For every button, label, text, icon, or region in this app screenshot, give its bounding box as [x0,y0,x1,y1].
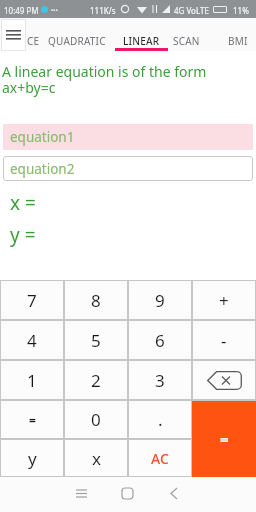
staticText: . [158,408,163,431]
staticText: 2 [91,369,101,392]
button[interactable] [86,477,171,512]
staticText: = [220,429,229,449]
button[interactable]: 7 [1,281,63,319]
staticText: 4G VoLTE [174,5,209,16]
staticText: 3 [155,369,165,392]
staticText: equation2 [10,160,75,178]
button[interactable]: 8 [65,281,127,319]
button[interactable]: SCAN [173,34,200,48]
staticText: y = [10,222,36,248]
button[interactable]: QUADRATIC [48,34,106,48]
staticText: 111K/s [90,5,116,16]
button[interactable]: 3 [129,361,191,399]
staticText: 8 [91,289,101,312]
button[interactable]: 9 [129,281,191,319]
staticText: y [28,447,37,470]
staticText: 4 [27,329,37,352]
staticText: 5 [91,329,101,352]
button[interactable]: CE [27,34,40,48]
staticText: 6 [155,329,165,352]
staticText: ... [51,2,58,13]
staticText: CE [27,34,40,48]
button[interactable]: equation1 [3,124,253,150]
button[interactable]: - [193,321,255,359]
staticText: 9 [155,289,165,312]
staticText: LINEAR [123,34,160,48]
button[interactable]: . [129,401,191,438]
staticText: QUADRATIC [48,34,106,48]
button[interactable]: 5 [65,321,127,359]
staticText: x [92,447,101,470]
button[interactable]: 1 [1,361,63,399]
button[interactable]: LINEAR [123,34,160,48]
button[interactable] [1,19,26,51]
staticText: SCAN [173,34,200,48]
button[interactable]: BMI [228,34,248,48]
staticText: 1 [27,369,37,392]
staticText: 0 [91,408,101,431]
button[interactable]: = [1,401,63,438]
button[interactable]: 6 [129,321,191,359]
staticText: 11% [233,5,249,16]
button[interactable] [171,477,256,512]
button[interactable]: + [193,281,255,319]
button[interactable]: = [192,401,256,477]
staticText: AC [151,449,169,468]
button[interactable]: 0 [65,401,127,438]
button[interactable]: equation2 [3,156,253,181]
button[interactable]: 4 [1,321,63,359]
staticText: + [219,289,229,312]
staticText: x = [10,190,36,216]
button[interactable] [0,477,86,512]
staticText: equation1 [10,128,75,146]
button[interactable]: 2 [65,361,127,399]
staticText: BMI [228,34,248,48]
staticText: 10:49 PM [4,5,39,16]
staticText: - [221,329,227,352]
button[interactable] [193,361,255,399]
staticText: 7 [27,289,37,312]
staticText: = [29,412,36,428]
button[interactable]: x [65,440,127,476]
staticText: A linear equation is of the form ax+by=c [2,62,207,97]
button[interactable]: AC [129,440,191,476]
button[interactable]: y [1,440,63,476]
